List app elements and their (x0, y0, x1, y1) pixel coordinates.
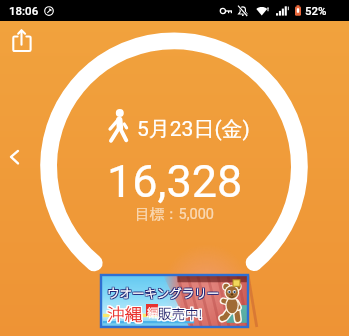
staticText: 販売中! (159, 303, 204, 323)
staticText: 販売中! (158, 304, 203, 324)
staticText: 販売中! (159, 302, 204, 322)
staticText: 沖縄 (108, 302, 143, 327)
staticText: 52% (305, 4, 327, 17)
staticText: ウオーキングラリー (106, 284, 219, 302)
staticText: ウオーキングラリー (107, 284, 220, 302)
staticText: 沖縄 (106, 301, 141, 326)
staticText: ウオーキングラリー (106, 283, 219, 301)
staticText: ウオーキングラリー (107, 282, 220, 300)
staticText: 沖縄 (107, 300, 142, 325)
staticText: 16,328 (107, 155, 243, 208)
staticText: 販売中! (157, 302, 202, 322)
staticText: 販売中! (159, 304, 204, 324)
staticText: ウオーキングラリー (108, 282, 221, 300)
button[interactable]: Share (8, 26, 36, 54)
staticText: 沖縄 (107, 301, 142, 326)
staticText: 沖縄 (107, 302, 142, 327)
staticText: 目標：5,000 (135, 205, 214, 223)
staticText: ウオーキングラリー (107, 283, 220, 301)
button[interactable]: Advertisement banner (101, 275, 248, 327)
staticText: 沖縄 (106, 302, 141, 327)
staticText: 販売中! (158, 302, 203, 322)
staticText: 販売中! (158, 303, 203, 323)
staticText: ウオーキングラリー (108, 283, 221, 301)
staticText: 沖縄 (108, 301, 143, 326)
button[interactable]: Previous day (2, 142, 28, 172)
staticText: ウオーキングラリー (108, 284, 221, 302)
staticText: 5月23日(金) (137, 116, 250, 142)
staticText: 販売中! (157, 303, 202, 323)
staticText: 18:06 (9, 4, 39, 17)
staticText: 販売中! (157, 304, 202, 324)
staticText: 編 (147, 304, 158, 320)
staticText: 沖縄 (106, 300, 141, 325)
staticText: ウオーキングラリー (106, 282, 219, 300)
staticText: 沖縄 (108, 300, 143, 325)
